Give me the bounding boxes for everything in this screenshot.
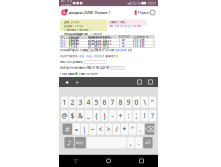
staticText: Заказ получен <box>79 72 98 75</box>
button[interactable]: Back <box>59 155 92 167</box>
button[interactable]: : <box>125 110 132 121</box>
staticText: 2 <box>70 98 74 107</box>
button[interactable]: ! <box>141 110 148 121</box>
staticText: | <box>82 125 86 134</box>
button[interactable]: ; <box>133 110 140 121</box>
staticText: ПОЛУЧАТЕЛЬ <box>60 54 78 58</box>
button[interactable]: ? <box>149 110 156 121</box>
button[interactable]: _ <box>85 110 92 121</box>
button[interactable]: 8 <box>117 96 124 108</box>
button[interactable]: 7 <box>109 96 116 108</box>
button[interactable]: + <box>117 110 124 121</box>
staticText: тел. 8919 и 22-33-44 <box>109 24 141 28</box>
button[interactable]: . <box>137 123 144 135</box>
button[interactable]: ( <box>93 110 100 121</box>
staticText: Крем для рук 50 мл, серия Дом <box>88 39 112 46</box>
staticText: Если вы не нашли себя в списке — напишит… <box>60 78 143 81</box>
staticText: 1 шт <box>119 44 125 47</box>
button[interactable]: = <box>73 123 80 135</box>
staticText: ! <box>143 111 145 120</box>
staticText: 1 шт <box>119 41 125 44</box>
staticText: №3 <box>61 44 66 47</box>
button[interactable]: 6 <box>101 96 108 108</box>
staticText: Билайн <box>61 3 72 7</box>
staticText: 55 % <box>132 0 140 6</box>
staticText: МТС RUS <box>61 0 72 3</box>
staticText: - <box>111 111 113 120</box>
staticText: ЧАСТНЫЙ ЗАКАЗ <box>69 33 82 40</box>
staticText: в архиве <box>102 54 114 58</box>
staticText: Крем для рук 50 мл, серия Дом <box>88 36 112 43</box>
button[interactable]: 1 <box>61 96 68 108</box>
staticText: ( <box>95 111 97 120</box>
button[interactable]: ~ <box>89 123 96 135</box>
button[interactable]: | <box>81 123 88 135</box>
staticText: всё <box>127 48 131 52</box>
button[interactable]: , <box>127 137 134 148</box>
staticText: ФИО получателя <box>60 60 83 64</box>
staticText: №1 <box>61 38 66 42</box>
button[interactable]: ) <box>101 110 108 121</box>
staticText: . <box>139 125 141 134</box>
staticText: ; <box>135 111 137 120</box>
button[interactable]: Copy <box>134 77 145 87</box>
staticText: игр. лиц. связь <box>79 54 101 58</box>
button[interactable]: 0 <box>133 96 140 108</box>
staticText: смотреть <box>115 48 126 52</box>
staticText: 6 <box>102 98 106 107</box>
staticText: & <box>78 111 83 120</box>
button[interactable]: ABC <box>75 137 86 148</box>
button[interactable]: * <box>121 123 128 135</box>
button[interactable]: . <box>135 137 142 148</box>
button[interactable]: " <box>149 96 156 108</box>
staticText: @ <box>61 111 67 120</box>
staticText: ▽ <box>73 158 77 164</box>
button[interactable]: \ <box>141 96 148 108</box>
staticText: 9 <box>126 98 130 107</box>
button[interactable]: ⌫ <box>145 123 154 135</box>
staticText: ⏎ <box>145 139 151 146</box>
button[interactable]: @ <box>61 110 68 121</box>
staticText: 19:01 <box>147 0 156 6</box>
button[interactable]: Refresh <box>150 10 155 15</box>
button[interactable]: 2 <box>69 96 76 108</box>
staticText: Время: 19:00 <box>64 24 84 28</box>
button[interactable]: Next <box>72 77 83 87</box>
button[interactable]: " <box>129 123 136 135</box>
button[interactable]: Recents <box>125 155 158 167</box>
staticText: * <box>122 125 126 134</box>
button[interactable]: > <box>105 123 112 135</box>
button[interactable]: Поиск <box>135 10 149 15</box>
button[interactable]: ⏎ <box>143 137 153 148</box>
button[interactable]: Home <box>92 155 125 167</box>
button[interactable]: 4 <box>85 96 92 108</box>
button[interactable]: Edit <box>145 77 156 87</box>
staticText: / <box>115 125 117 134</box>
button[interactable]: - <box>109 110 116 121</box>
staticText: 1 шт <box>119 38 125 42</box>
button[interactable]: 5 <box>93 96 100 108</box>
button[interactable]: & <box>77 110 84 121</box>
staticText: 5 <box>94 98 98 107</box>
staticText: # <box>65 125 69 134</box>
staticText: ? <box>151 111 154 120</box>
button[interactable]: # <box>62 123 72 135</box>
button[interactable]: Previous <box>61 77 72 87</box>
button[interactable]: 9 <box>125 96 132 108</box>
staticText: Заказ в Чаты <box>109 20 125 24</box>
button[interactable]: 3 <box>77 96 84 108</box>
button[interactable]: ♪ <box>64 137 74 148</box>
staticText: ▶ <box>76 80 79 84</box>
staticText: 250 руб. <box>133 41 146 44</box>
staticText: НАИМЕНОВАНИЕ <box>88 35 110 39</box>
staticText: 3 <box>78 98 82 107</box>
button[interactable]: $ <box>69 110 76 121</box>
staticText: 7 <box>110 98 114 107</box>
button[interactable]: < <box>97 123 104 135</box>
button[interactable]: / <box>113 123 120 135</box>
staticText: ~ <box>90 125 94 134</box>
staticText: > <box>106 125 110 134</box>
